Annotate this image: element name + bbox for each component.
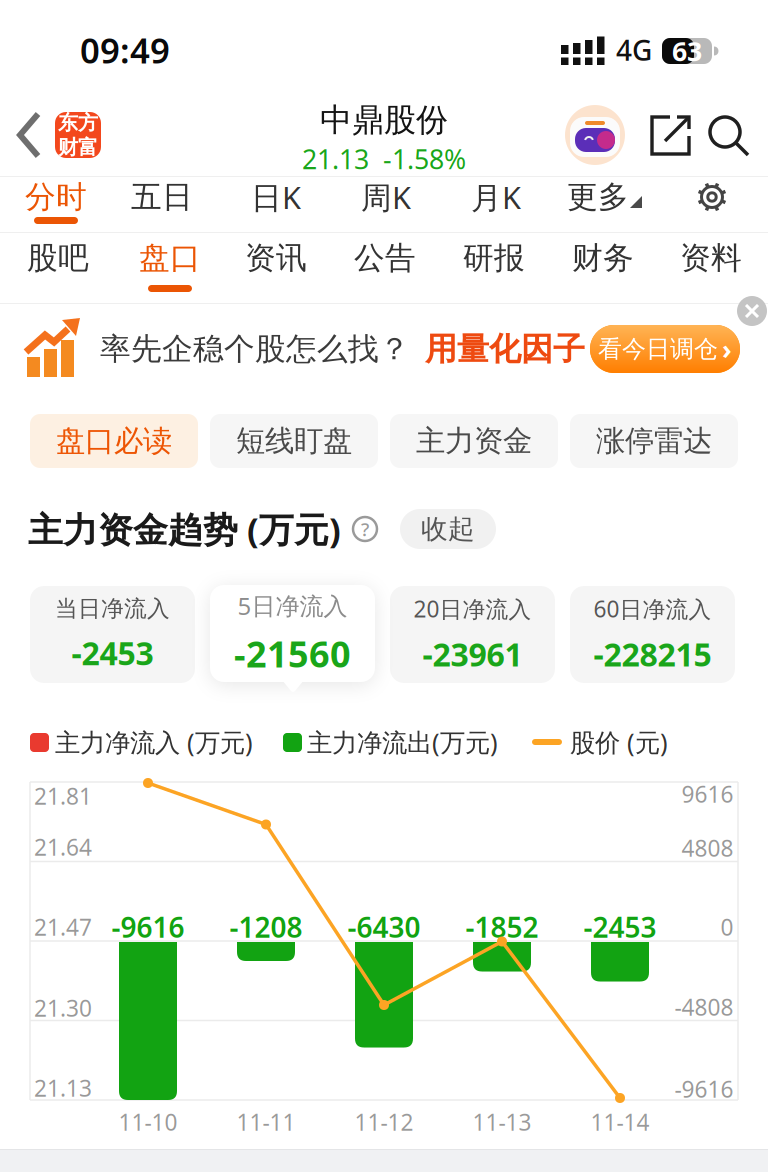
staticText: 0 <box>720 912 733 942</box>
staticText: 财务 <box>572 239 634 277</box>
staticText: 资讯 <box>245 239 307 277</box>
staticText: -2453 <box>583 908 656 946</box>
button[interactable]: 收起 <box>400 509 496 549</box>
staticText: 主力资金 <box>416 423 532 459</box>
staticText: 用量化因子 <box>425 329 585 369</box>
staticText: 分时 <box>25 178 87 216</box>
button[interactable]: 资讯 <box>216 236 336 280</box>
button[interactable]: 五日 <box>102 175 222 219</box>
button[interactable]: 周K <box>326 175 446 219</box>
button[interactable]: 20日净流入 <box>390 586 555 683</box>
staticText: 周K <box>361 177 411 217</box>
staticText: 20日净流入 <box>413 594 531 624</box>
staticText: -2453 <box>71 632 153 674</box>
staticText: 9616 <box>681 779 733 809</box>
button[interactable] <box>737 296 767 326</box>
button[interactable] <box>696 181 728 213</box>
button[interactable]: 短线盯盘 <box>210 414 378 468</box>
button[interactable]: ? <box>352 516 378 542</box>
staticText: 5日净流入 <box>237 590 347 622</box>
staticText: 21.47 <box>34 912 92 942</box>
staticText: 09:49 <box>80 27 170 73</box>
staticText: 4808 <box>681 833 733 863</box>
staticText: ? <box>361 517 369 541</box>
staticText: -6430 <box>347 908 420 946</box>
staticText: 中鼎股份 <box>320 100 448 140</box>
staticText: 财富 <box>58 135 98 160</box>
staticText: 研报 <box>463 239 525 277</box>
staticText: 日K <box>251 177 301 217</box>
staticText: 股吧 <box>27 239 89 277</box>
button[interactable] <box>565 105 625 165</box>
button[interactable]: 看今日调仓 <box>590 325 740 373</box>
staticText: 看今日调仓 <box>598 334 718 364</box>
staticText: 21.13 <box>302 141 369 177</box>
staticText: -1208 <box>229 908 302 946</box>
button[interactable]: 研报 <box>434 236 554 280</box>
staticText: 11-10 <box>118 1107 177 1137</box>
button[interactable]: 东方 <box>55 112 101 158</box>
staticText: 盘口必读 <box>56 423 172 459</box>
button[interactable]: 盘口必读 <box>30 414 198 468</box>
staticText: 60日净流入 <box>593 594 711 624</box>
staticText: 五日 <box>131 178 193 216</box>
button[interactable]: 涨停雷达 <box>570 414 738 468</box>
staticText: -9616 <box>111 908 184 946</box>
staticText: 11-12 <box>354 1107 413 1137</box>
staticText: › <box>722 331 732 367</box>
staticText: 东方 <box>58 110 98 135</box>
staticText: 21.30 <box>34 993 92 1023</box>
staticText: -4808 <box>674 992 733 1022</box>
button[interactable]: 盘口 <box>110 236 230 280</box>
staticText: 率先企稳个股怎么找？ <box>100 330 410 368</box>
staticText: 11-11 <box>236 1107 295 1137</box>
staticText: 涨停雷达 <box>596 423 712 459</box>
staticText: 公告 <box>354 239 416 277</box>
button[interactable]: 资料 <box>651 236 768 280</box>
staticText: 63 <box>672 33 702 69</box>
staticText: 主力资金趋势 (万元) <box>28 506 341 552</box>
staticText: 21.13 <box>34 1073 92 1103</box>
staticText: 21.64 <box>34 832 92 862</box>
button[interactable]: 日K <box>216 175 336 219</box>
button[interactable]: 公告 <box>325 236 445 280</box>
staticText: 资料 <box>680 239 742 277</box>
staticText: 盘口 <box>139 239 201 277</box>
staticText: -1.58% <box>383 141 466 177</box>
button[interactable] <box>650 114 692 156</box>
staticText: 短线盯盘 <box>236 423 352 459</box>
button[interactable]: 当日净流入 <box>30 586 195 683</box>
staticText: -1852 <box>465 908 538 946</box>
button[interactable] <box>0 78 50 176</box>
staticText: -9616 <box>674 1074 733 1104</box>
staticText: 月K <box>471 177 521 217</box>
staticText: 11-14 <box>590 1107 649 1137</box>
staticText: 当日净流入 <box>55 595 170 623</box>
button[interactable]: 分时 <box>0 175 116 219</box>
staticText: 更多 <box>567 178 629 216</box>
staticText: 主力净流出(万元) <box>307 725 498 759</box>
staticText: 21.81 <box>34 781 92 811</box>
button[interactable] <box>707 114 751 158</box>
staticText: 股价 (元) <box>570 725 668 759</box>
staticText: -23961 <box>422 633 522 675</box>
staticText: -21560 <box>234 629 351 677</box>
button[interactable]: 月K <box>436 175 556 219</box>
button[interactable]: 主力资金 <box>390 414 558 468</box>
staticText: 收起 <box>421 513 475 545</box>
button[interactable]: 60日净流入 <box>570 586 735 683</box>
button[interactable]: 股吧 <box>0 236 118 280</box>
staticText: 主力净流入 (万元) <box>55 725 253 759</box>
staticText: 4G <box>616 31 652 69</box>
staticText: 11-13 <box>472 1107 531 1137</box>
button[interactable]: 5日净流入 <box>210 585 375 682</box>
button[interactable]: 财务 <box>543 236 663 280</box>
button[interactable]: 更多 <box>538 175 658 219</box>
staticText: -228215 <box>593 633 711 675</box>
